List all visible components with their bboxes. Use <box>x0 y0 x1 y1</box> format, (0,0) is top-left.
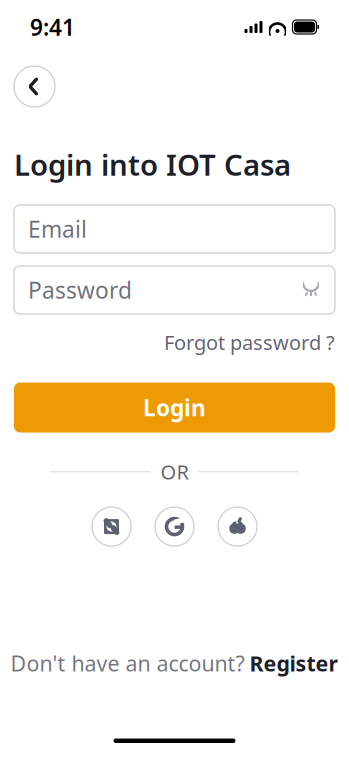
button[interactable]: Email <box>14 205 335 253</box>
staticText: Login <box>143 392 206 423</box>
staticText: Register <box>249 649 338 677</box>
staticText: OR <box>160 458 188 485</box>
staticText: Login into IOT Casa <box>14 145 291 184</box>
button[interactable]: Password <box>14 266 335 314</box>
staticText: Email <box>28 214 87 244</box>
button[interactable]: Back <box>14 66 55 107</box>
button[interactable]: Sign in with Google <box>155 507 194 546</box>
button[interactable]: Forgot password ? <box>164 323 335 362</box>
staticText: Forgot password ? <box>164 329 335 356</box>
staticText: Password <box>28 275 132 305</box>
button[interactable]: Don't have an account? <box>10 643 338 683</box>
staticText: Don't have an account? <box>10 649 244 677</box>
button[interactable]: Sign in with Apple <box>218 507 257 546</box>
staticText: 9:41 <box>30 12 75 42</box>
button[interactable]: Sign in with phone <box>92 507 131 546</box>
button[interactable]: Login <box>14 382 335 432</box>
